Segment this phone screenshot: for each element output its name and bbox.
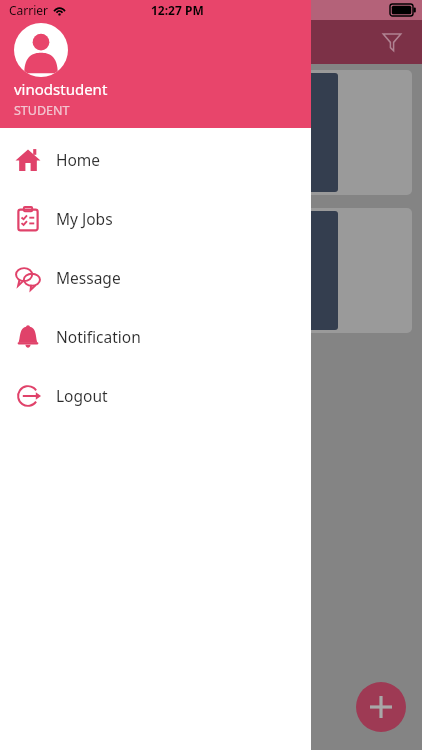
button[interactable]: $ 10/hr	[10, 70, 412, 195]
staticText: $ 10/hr	[147, 121, 205, 144]
staticText: Home	[56, 149, 101, 170]
staticText: Carrier	[9, 2, 49, 18]
staticText: vinodstudent	[14, 79, 108, 99]
staticText: Message	[56, 267, 121, 288]
button[interactable]: Filter	[372, 22, 412, 62]
button[interactable]: Logout	[0, 366, 311, 425]
button[interactable]: Notification	[0, 307, 311, 366]
staticText: STUDENT	[14, 102, 70, 119]
staticText: My Jobs	[56, 208, 113, 229]
button[interactable]: Profile photo	[14, 23, 68, 77]
button[interactable]: Add job	[356, 682, 406, 732]
button[interactable]: $ 10/hr	[10, 208, 412, 333]
staticText: Notification	[56, 326, 141, 347]
button[interactable]: Message	[0, 248, 311, 307]
button[interactable]: My Jobs	[0, 189, 311, 248]
button[interactable]: Home	[0, 130, 311, 189]
staticText: 12:27 PM	[151, 2, 204, 18]
staticText: Logout	[56, 385, 108, 406]
